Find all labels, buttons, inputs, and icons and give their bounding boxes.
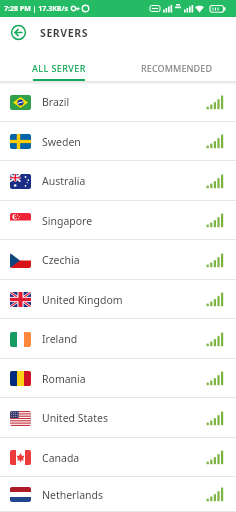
staticText: RECOMMENDED xyxy=(141,62,213,74)
staticText: SERVERS xyxy=(40,26,89,40)
button[interactable]: ALL SERVER xyxy=(0,48,118,81)
staticText: United Kingdom xyxy=(42,293,123,307)
button[interactable]: Netherlands xyxy=(0,477,236,512)
staticText: 7:28 PM | 17.3KB/s xyxy=(4,4,68,14)
button[interactable]: United Kingdom xyxy=(0,280,236,319)
staticText: Romania xyxy=(42,372,86,386)
button[interactable] xyxy=(10,24,27,41)
staticText: Canada xyxy=(42,451,80,465)
staticText: Australia xyxy=(42,174,86,188)
staticText: Czechia xyxy=(42,253,80,267)
staticText: Brazil xyxy=(42,95,70,109)
staticText: United States xyxy=(42,411,108,425)
button[interactable]: Australia xyxy=(0,161,236,201)
button[interactable]: Canada xyxy=(0,438,236,477)
staticText: Ireland xyxy=(42,332,78,346)
button[interactable]: Czechia xyxy=(0,240,236,280)
staticText: Singapore xyxy=(42,214,93,228)
button[interactable]: Singapore xyxy=(0,201,236,240)
staticText: ALL SERVER xyxy=(32,62,86,74)
button[interactable]: Ireland xyxy=(0,319,236,359)
button[interactable]: RECOMMENDED xyxy=(118,48,236,81)
button[interactable]: Brazil xyxy=(0,82,236,122)
button[interactable]: United States xyxy=(0,398,236,438)
button[interactable]: Sweden xyxy=(0,122,236,161)
staticText: Netherlands xyxy=(42,488,104,502)
button[interactable]: Romania xyxy=(0,359,236,398)
staticText: Sweden xyxy=(42,135,81,149)
